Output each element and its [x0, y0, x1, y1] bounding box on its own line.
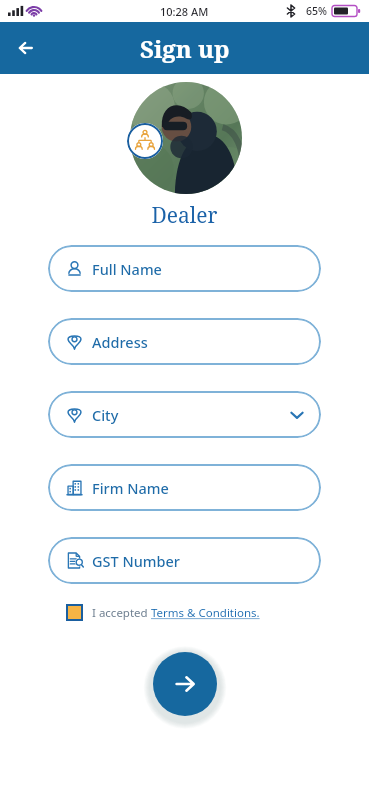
staticText: I accepted: [92, 605, 151, 621]
button[interactable]: Address: [48, 318, 321, 365]
staticText: 65%: [306, 4, 327, 18]
staticText: Dealer: [0, 201, 369, 230]
button[interactable]: Firm Name: [48, 464, 321, 511]
staticText: GST Number: [92, 551, 180, 571]
staticText: Sign up: [140, 32, 230, 65]
button[interactable]: I accepted: [66, 604, 369, 621]
staticText: Firm Name: [92, 478, 169, 498]
staticText: Full Name: [92, 259, 162, 279]
button[interactable]: Back: [6, 27, 48, 69]
button[interactable]: Full Name: [48, 245, 321, 292]
button[interactable]: City: [48, 391, 321, 438]
staticText: Address: [92, 332, 148, 352]
button[interactable]: GST Number: [48, 537, 321, 584]
button[interactable]: Change role: [127, 123, 163, 159]
staticText: Terms & Conditions.: [151, 605, 260, 621]
staticText: 10:28 AM: [160, 4, 209, 19]
button[interactable]: Next: [153, 652, 217, 716]
staticText: City: [92, 405, 119, 425]
